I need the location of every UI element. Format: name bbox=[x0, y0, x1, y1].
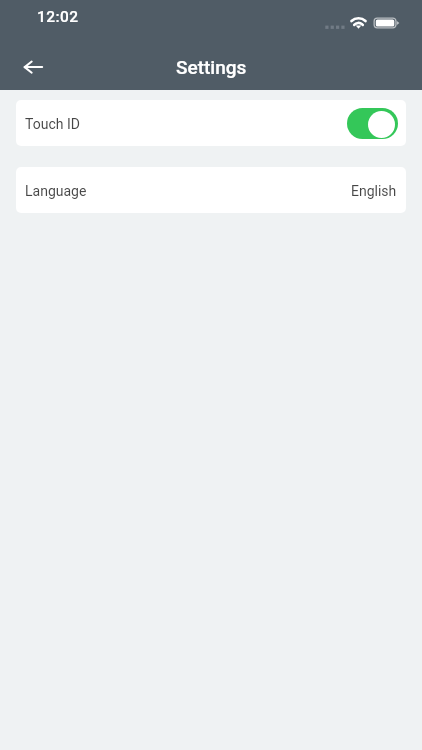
button[interactable]: Back bbox=[12, 48, 52, 88]
button[interactable]: Language bbox=[16, 167, 406, 213]
staticText: Touch ID bbox=[25, 116, 80, 132]
staticText: English bbox=[351, 183, 397, 199]
button[interactable]: Touch ID on bbox=[347, 108, 398, 139]
staticText: Settings bbox=[176, 56, 247, 78]
staticText: 12:02 bbox=[37, 8, 79, 26]
staticText: Language bbox=[25, 183, 87, 199]
button[interactable]: Touch ID bbox=[16, 100, 406, 146]
